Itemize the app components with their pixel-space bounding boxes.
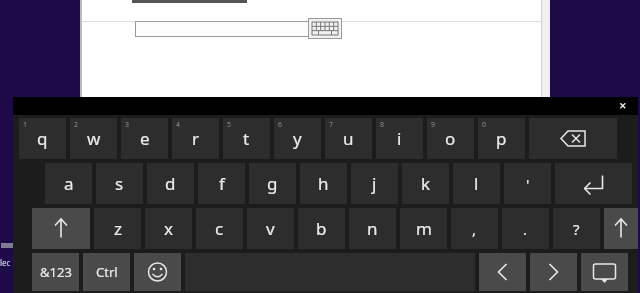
button[interactable]: 0: [478, 118, 525, 159]
button[interactable]: Hide keyboard: [581, 253, 628, 291]
staticText: b: [316, 217, 327, 240]
staticText: y: [293, 127, 302, 150]
staticText: ?: [573, 219, 580, 239]
staticText: m: [416, 217, 432, 240]
staticText: l: [474, 172, 479, 195]
button[interactable]: l: [453, 163, 500, 204]
button[interactable]: 3: [121, 118, 168, 159]
button[interactable]: f: [198, 163, 245, 204]
button[interactable]: a: [45, 163, 92, 204]
staticText: e: [140, 127, 150, 150]
button[interactable]: b: [298, 208, 345, 249]
button[interactable]: Right: [530, 253, 577, 291]
button[interactable]: m: [400, 208, 447, 249]
staticText: k: [421, 172, 431, 195]
button[interactable]: n: [349, 208, 396, 249]
button[interactable]: 2: [70, 118, 117, 159]
button[interactable]: Shift: [32, 208, 90, 249]
button[interactable]: Ctrl: [83, 253, 130, 291]
staticText: 6: [278, 120, 283, 130]
staticText: q: [37, 127, 48, 150]
button[interactable]: Backspace: [529, 118, 617, 159]
button[interactable]: g: [249, 163, 296, 204]
button[interactable]: h: [300, 163, 347, 204]
button[interactable]: 4: [172, 118, 219, 159]
staticText: r: [192, 127, 200, 150]
staticText: ': [526, 174, 530, 194]
staticText: 5: [227, 120, 232, 130]
staticText: 2: [74, 120, 79, 130]
staticText: z: [114, 217, 122, 240]
staticText: s: [115, 172, 124, 195]
button[interactable]: x: [145, 208, 192, 249]
staticText: x: [164, 217, 173, 240]
button[interactable]: .: [502, 208, 549, 249]
staticText: 9: [431, 120, 436, 130]
staticText: u: [343, 127, 354, 150]
button[interactable]: Left: [479, 253, 526, 291]
staticText: c: [215, 217, 224, 240]
staticText: f: [219, 172, 225, 195]
button[interactable]: c: [196, 208, 243, 249]
button[interactable]: Shift: [604, 208, 638, 249]
staticText: ✕: [619, 101, 627, 111]
staticText: 1: [23, 120, 28, 130]
button[interactable]: 7: [325, 118, 372, 159]
button[interactable]: j: [351, 163, 398, 204]
button[interactable]: z: [94, 208, 141, 249]
button[interactable]: 8: [376, 118, 423, 159]
button[interactable]: Close keyboard: [616, 99, 630, 113]
staticText: .: [523, 219, 528, 239]
staticText: lec: [0, 257, 11, 268]
button[interactable]: Enter: [555, 163, 632, 204]
button[interactable]: 1: [19, 118, 66, 159]
staticText: Ctrl: [96, 263, 118, 281]
button[interactable]: Show touch keyboard: [308, 18, 342, 39]
staticText: &123: [40, 263, 72, 281]
staticText: n: [367, 217, 378, 240]
button[interactable]: 6: [274, 118, 321, 159]
staticText: v: [266, 217, 275, 240]
staticText: 8: [380, 120, 385, 130]
staticText: 3: [125, 120, 130, 130]
button[interactable]: [135, 21, 317, 37]
button[interactable]: d: [147, 163, 194, 204]
staticText: j: [372, 172, 377, 195]
staticText: a: [64, 172, 74, 195]
button[interactable]: v: [247, 208, 294, 249]
staticText: 7: [329, 120, 334, 130]
staticText: d: [165, 172, 176, 195]
staticText: t: [243, 127, 250, 150]
button[interactable]: s: [96, 163, 143, 204]
button[interactable]: ': [504, 163, 551, 204]
staticText: 4: [176, 120, 181, 130]
staticText: h: [318, 172, 329, 195]
staticText: o: [445, 127, 456, 150]
button[interactable]: 9: [427, 118, 474, 159]
staticText: 0: [482, 120, 487, 130]
staticText: ,: [472, 219, 477, 239]
button[interactable]: &123: [32, 253, 79, 291]
button[interactable]: Emoji: [134, 253, 181, 291]
button[interactable]: k: [402, 163, 449, 204]
button[interactable]: ?: [553, 208, 600, 249]
button[interactable]: 5: [223, 118, 270, 159]
staticText: i: [397, 127, 402, 150]
button[interactable]: ,: [451, 208, 498, 249]
staticText: p: [496, 127, 507, 150]
staticText: g: [267, 172, 278, 195]
staticText: w: [87, 127, 101, 150]
